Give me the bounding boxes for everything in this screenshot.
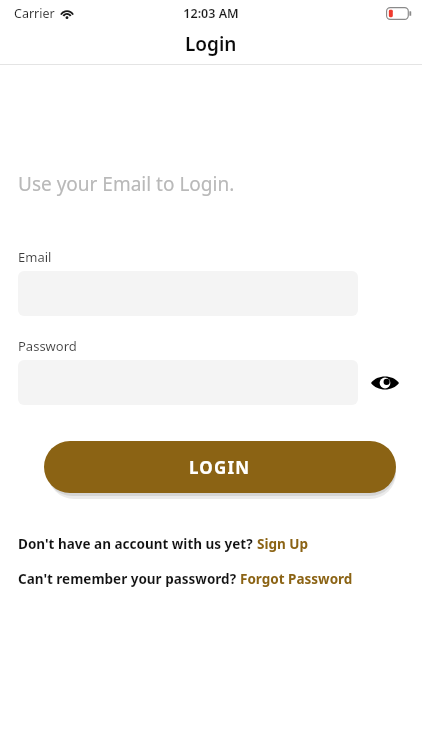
- staticText: Can't remember your password?: [18, 570, 240, 588]
- staticText: LOGIN: [189, 456, 251, 479]
- staticText: Password: [18, 337, 77, 355]
- button[interactable]: Forgot Password: [240, 570, 353, 588]
- staticText: Sign Up: [257, 535, 309, 553]
- staticText: Don't have an account with us yet?: [18, 535, 257, 553]
- staticText: Login: [185, 31, 237, 57]
- staticText: Use your Email to Login.: [18, 171, 235, 197]
- staticText: Carrier: [14, 5, 55, 22]
- button[interactable]: Show password: [370, 370, 400, 396]
- staticText: Email: [18, 248, 52, 266]
- staticText: 12:03 AM: [183, 5, 239, 22]
- staticText: Forgot Password: [240, 570, 353, 588]
- button[interactable]: Sign Up: [257, 535, 309, 553]
- button[interactable]: LOGIN: [44, 441, 396, 493]
